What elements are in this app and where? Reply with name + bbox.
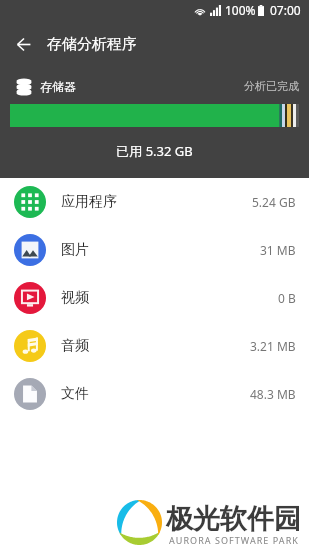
staticText: 分析已完成	[244, 79, 299, 93]
staticText: 图片	[61, 241, 89, 259]
staticText: 48.3 MB	[250, 386, 296, 402]
staticText: 100%	[225, 2, 256, 18]
button[interactable]: 应用程序	[0, 178, 309, 226]
button[interactable]: 图片	[0, 226, 309, 274]
staticText: 5.24 GB	[252, 194, 296, 210]
staticText: 31 MB	[260, 242, 296, 258]
button[interactable]: 视频	[0, 274, 309, 322]
staticText: AURORA SOFTWARE PARK	[169, 534, 299, 546]
button[interactable]: 文件	[0, 370, 309, 418]
button[interactable]: 音频	[0, 322, 309, 370]
staticText: 极光软件园	[166, 502, 301, 536]
button[interactable]: Back	[0, 20, 47, 68]
staticText: 文件	[61, 385, 89, 403]
staticText: 3.21 MB	[250, 338, 296, 354]
staticText: 音频	[61, 337, 89, 355]
staticText: 存储器	[40, 79, 76, 94]
staticText: 视频	[61, 289, 89, 307]
staticText: 存储分析程序	[47, 35, 137, 54]
staticText: 已用 5.32 GB	[0, 142, 309, 160]
staticText: 0 B	[278, 290, 296, 306]
staticText: 07:00	[270, 2, 301, 18]
staticText: 应用程序	[61, 193, 117, 211]
